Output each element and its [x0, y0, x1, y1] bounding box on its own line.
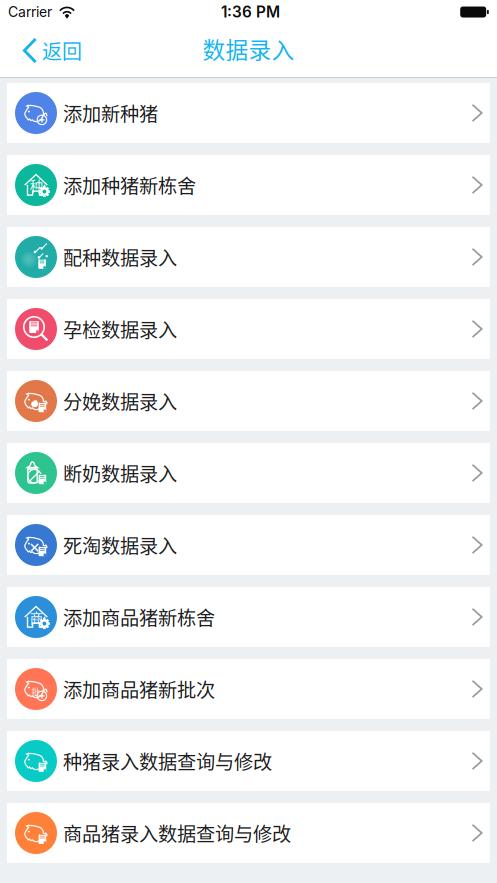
button[interactable]: 商品猪录入数据查询与修改	[7, 803, 490, 863]
staticText: 返回	[42, 36, 82, 65]
button[interactable]: 种	[7, 155, 490, 215]
button[interactable]: 分娩数据录入	[7, 371, 490, 431]
button[interactable]: 商	[7, 587, 490, 647]
button[interactable]: 返回	[0, 24, 96, 77]
staticText: 种	[30, 176, 43, 195]
staticText: 种猪录入数据查询与修改	[63, 747, 272, 775]
button[interactable]: 断奶数据录入	[7, 443, 490, 503]
staticText: 1:36 PM	[221, 3, 280, 21]
staticText: 孕检数据录入	[63, 315, 177, 343]
staticText: 分娩数据录入	[63, 387, 177, 415]
button[interactable]: 种猪录入数据查询与修改	[7, 731, 490, 791]
button[interactable]: 死淘数据录入	[7, 515, 490, 575]
staticText: 添加商品猪新批次	[63, 675, 215, 703]
button[interactable]: 配种数据录入	[7, 227, 490, 287]
staticText: 添加种猪新栋舍	[63, 171, 196, 199]
staticText: 死淘数据录入	[63, 531, 177, 559]
staticText: 断奶数据录入	[63, 459, 177, 487]
staticText: 配种数据录入	[63, 243, 177, 271]
staticText: 商品猪录入数据查询与修改	[63, 819, 291, 847]
staticText: Carrier	[8, 3, 52, 20]
staticText: 添加新种猪	[63, 99, 158, 127]
staticText: 商	[30, 608, 43, 627]
button[interactable]: 添加新种猪	[7, 83, 490, 143]
button[interactable]: 孕检数据录入	[7, 299, 490, 359]
staticText: 数据录入	[202, 32, 294, 65]
staticText: 添加商品猪新栋舍	[63, 603, 215, 631]
button[interactable]: 批	[7, 659, 490, 719]
staticText: 批	[31, 685, 40, 698]
